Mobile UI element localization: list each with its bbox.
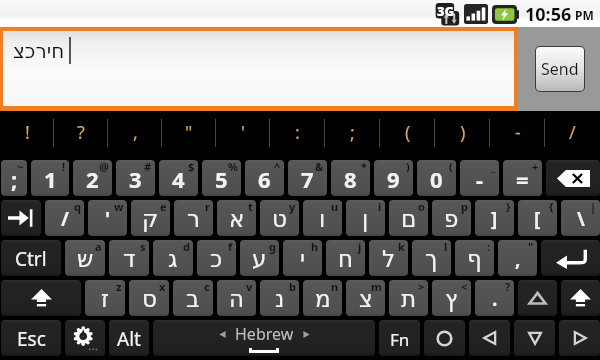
button[interactable]: Arrow down [514,320,555,356]
staticText: x [159,280,166,294]
staticText: א [229,206,245,233]
button[interactable]: י [283,240,322,276]
button[interactable]: ! [0,111,54,158]
button[interactable]: פ [432,200,471,236]
button[interactable]: 2 [73,160,112,196]
button[interactable]: ; [1,160,27,196]
staticText: v [246,280,253,294]
button[interactable]: 1 [31,160,69,196]
staticText: PM [575,7,594,23]
button[interactable]: ף [455,240,494,276]
button[interactable]: ( [380,111,435,158]
button[interactable]: " [162,111,216,158]
button[interactable]: ל [369,240,408,276]
button[interactable]: ר [174,200,213,236]
button[interactable]: 6 [245,160,284,196]
staticText: ה [229,286,245,313]
button[interactable]: 8 [331,160,370,196]
button[interactable]: = [503,160,542,196]
button[interactable]: - [460,160,499,196]
button[interactable]: 7 [288,160,327,196]
button[interactable]: Alt [109,320,149,356]
button[interactable]: Arrow right [559,320,600,356]
staticText: " [528,240,534,254]
button[interactable]: 9 [374,160,413,196]
button[interactable]: ת [389,280,428,316]
staticText: Send [541,58,579,80]
button[interactable]: ם [389,200,428,236]
button[interactable]: Backspace [546,160,600,196]
staticText: ] [491,206,498,232]
button[interactable]: Send [536,47,584,91]
button[interactable]: / [545,111,600,158]
button[interactable]: Shift [1,280,81,316]
button[interactable]: ח [326,240,365,276]
button[interactable]: ' [88,200,127,236]
button[interactable]: , [108,111,162,158]
button[interactable]: Caps lock [518,280,557,316]
staticText: חירכצ [13,39,65,62]
button[interactable]: א [217,200,256,236]
button[interactable]: / [45,200,84,236]
button[interactable]: Arrow left [469,320,510,356]
staticText: ' [105,206,111,232]
button[interactable]: - [490,111,545,158]
button[interactable]: ק [131,200,170,236]
button[interactable]: Space [153,320,375,356]
button[interactable]: נ [260,280,299,316]
button[interactable]: 4 [159,160,198,196]
button[interactable]: ע [240,240,279,276]
staticText: o [418,200,425,214]
staticText: ן [362,206,369,233]
button[interactable]: ג [153,240,193,276]
button[interactable]: Fn [379,320,420,356]
button[interactable]: Keyboard settings [65,320,105,356]
button[interactable]: \ [561,200,600,236]
button[interactable]: ס [129,280,169,316]
button[interactable]: ב [173,280,213,316]
button[interactable]: Shift [561,280,600,316]
staticText: ח [338,246,354,273]
staticText: c [204,280,210,294]
staticText: [ [534,206,541,232]
button[interactable]: Ctrl [1,240,61,276]
staticText: / [61,206,69,232]
button[interactable]: צ [346,280,385,316]
staticText: נ [275,286,285,313]
button[interactable]: ן [346,200,385,236]
button[interactable]: ; [325,111,380,158]
button[interactable]: חירכצ [3,31,514,106]
button[interactable]: ט [260,200,299,236]
button[interactable]: 3 [116,160,155,196]
button[interactable]: ש [65,240,105,276]
button[interactable]: ? [54,111,108,158]
button[interactable]: ה [217,280,256,316]
button[interactable]: . [475,280,514,316]
staticText: ס [142,286,157,313]
staticText: } [506,200,511,214]
button[interactable]: ץ [432,280,471,316]
button[interactable]: Tab [1,200,41,236]
staticText: r [205,200,210,214]
staticText: - [515,120,521,145]
button[interactable]: ך [412,240,451,276]
staticText: ר [187,206,200,233]
button[interactable]: Esc [1,320,61,356]
button[interactable]: ד [109,240,149,276]
button[interactable]: ' [216,111,270,158]
button[interactable]: ] [475,200,514,236]
staticText: h [311,240,319,254]
button[interactable]: ) [435,111,490,158]
button[interactable]: מ [303,280,342,316]
button[interactable]: : [270,111,325,158]
button[interactable]: 5 [202,160,241,196]
button[interactable]: 0 [417,160,456,196]
button[interactable]: [ [518,200,557,236]
staticText: Ctrl [15,246,47,272]
button[interactable]: Enter [541,240,600,276]
button[interactable]: Select [424,320,465,356]
button[interactable]: כ [197,240,236,276]
button[interactable]: ו [303,200,342,236]
button[interactable]: ז [85,280,125,316]
button[interactable]: , [498,240,537,276]
